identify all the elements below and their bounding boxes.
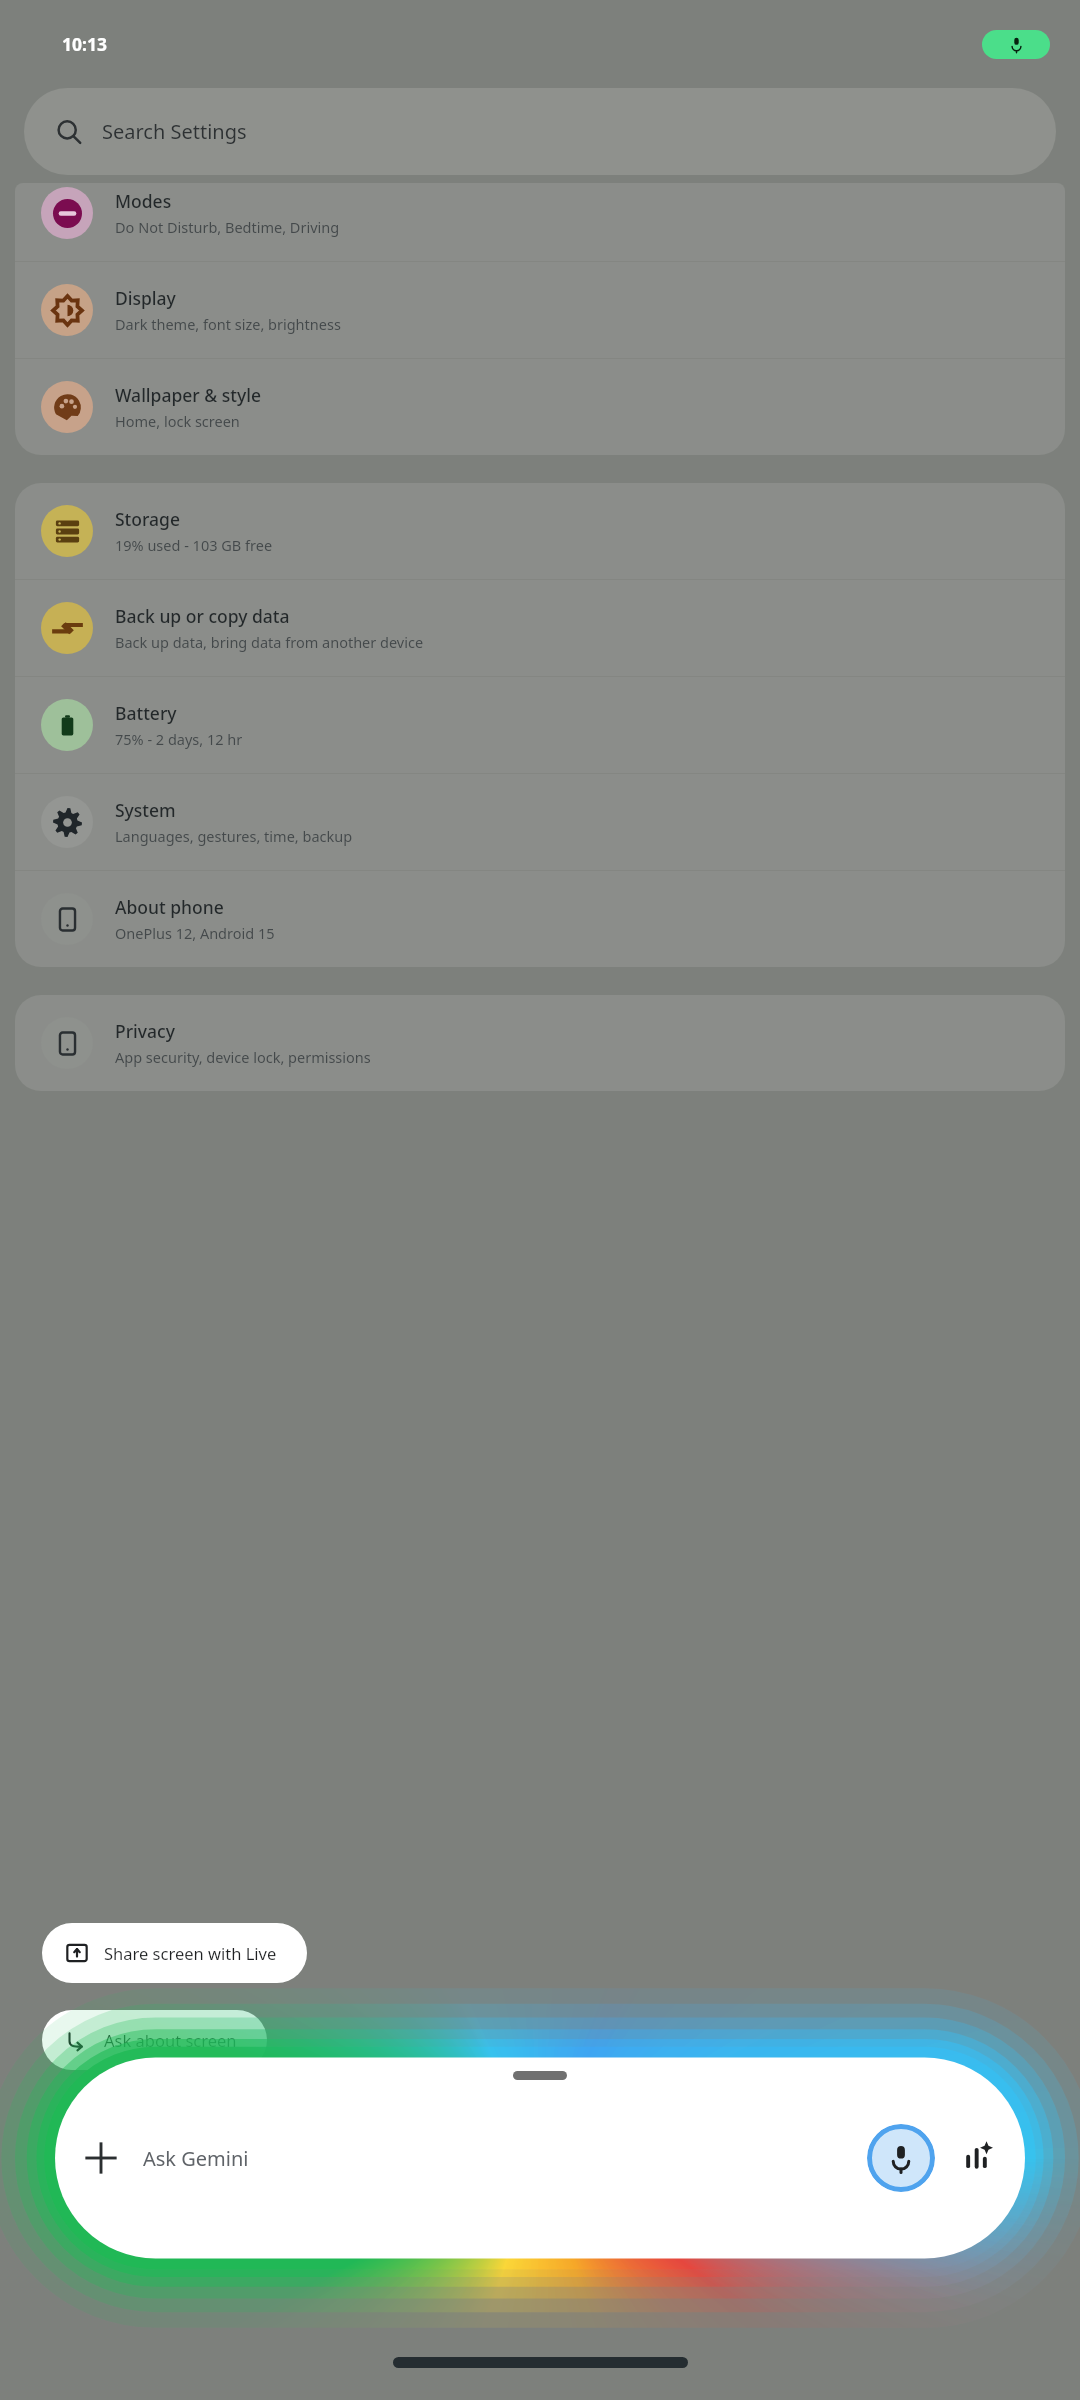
button[interactable]: Privacy (15, 995, 1065, 1091)
staticText: Storage (115, 507, 180, 531)
button[interactable]: Storage (15, 483, 1065, 579)
button[interactable]: System (15, 774, 1065, 870)
staticText: Wallpaper & style (115, 383, 261, 407)
staticText: Home, lock screen (115, 411, 240, 431)
button[interactable]: Back up or copy data (15, 580, 1065, 676)
button[interactable]: Gemini Live (951, 2132, 1003, 2184)
staticText: 19% used - 103 GB free (115, 535, 273, 555)
staticText: Search Settings (102, 118, 247, 145)
button[interactable]: Display (15, 262, 1065, 358)
staticText: Back up data, bring data from another de… (115, 632, 424, 652)
staticText: Do Not Disturb, Bedtime, Driving (115, 217, 340, 237)
staticText: Dark theme, font size, brightness (115, 314, 341, 334)
button[interactable]: Ask about screen (42, 2010, 267, 2070)
staticText: Ask about screen (104, 2029, 237, 2051)
button[interactable]: Modes (15, 183, 1065, 261)
staticText: About phone (115, 895, 224, 919)
staticText: Share screen with Live (104, 1942, 277, 1964)
button[interactable]: Share screen with Live (42, 1923, 307, 1983)
button[interactable]: Add attachment (77, 2134, 125, 2182)
staticText: System (115, 798, 176, 822)
staticText: 10:13 (62, 32, 107, 56)
button[interactable]: Battery (15, 677, 1065, 773)
staticText: Privacy (115, 1019, 175, 1043)
staticText: App security, device lock, permissions (115, 1047, 371, 1067)
button[interactable]: Voice input (867, 2124, 935, 2192)
button[interactable]: Search Settings (24, 88, 1056, 175)
staticText: Languages, gestures, time, backup (115, 826, 353, 846)
button[interactable]: Wallpaper & style (15, 359, 1065, 455)
staticText: Battery (115, 701, 177, 725)
button[interactable]: About phone (15, 871, 1065, 967)
staticText: 75% - 2 days, 12 hr (115, 729, 243, 749)
staticText: OnePlus 12, Android 15 (115, 923, 275, 943)
staticText: Back up or copy data (115, 604, 290, 628)
staticText: Modes (115, 189, 172, 213)
staticText: Ask Gemini (143, 2145, 867, 2172)
staticText: Display (115, 286, 176, 310)
button[interactable]: Microphone active (982, 30, 1050, 59)
